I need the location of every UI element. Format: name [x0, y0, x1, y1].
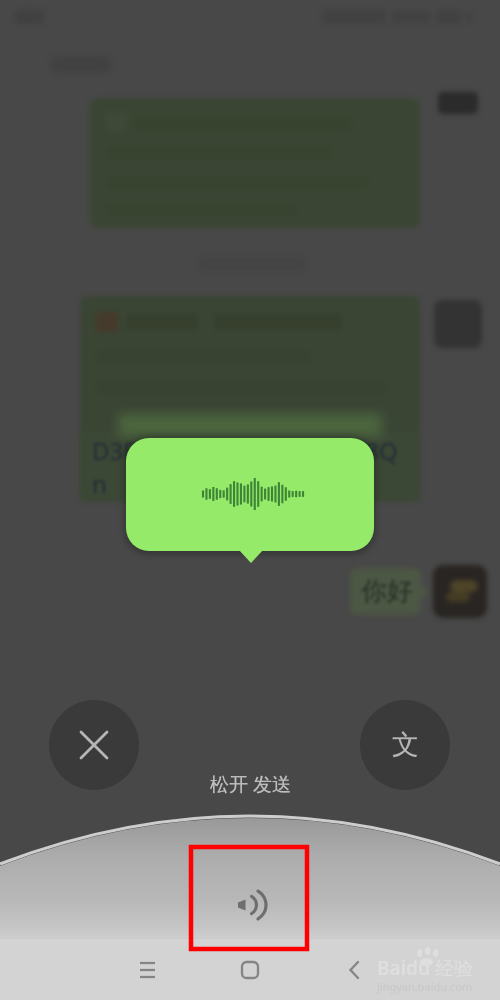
staticText: Baidu 经验	[377, 955, 473, 981]
staticText: 松开 发送	[210, 771, 291, 797]
staticText: jingyan.baidu.com	[377, 979, 473, 994]
button[interactable]: Voice input	[189, 845, 307, 950]
staticText: 你好	[361, 575, 413, 608]
button[interactable]: Convert to text	[360, 700, 450, 790]
staticText: D3P	[92, 434, 138, 467]
staticText: n	[92, 467, 107, 500]
staticText: 文	[392, 728, 419, 762]
staticText: f8Q	[357, 434, 398, 467]
button[interactable]: Cancel recording	[49, 700, 139, 790]
